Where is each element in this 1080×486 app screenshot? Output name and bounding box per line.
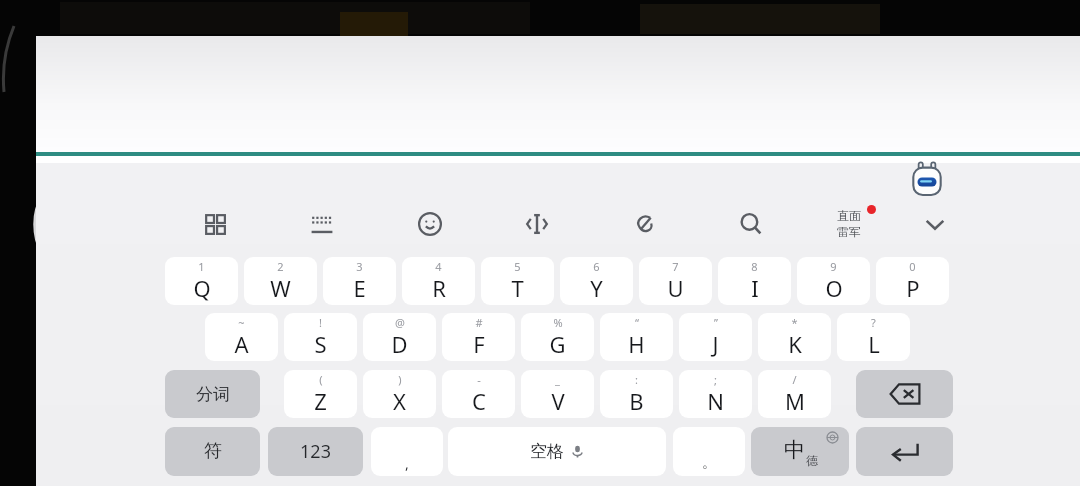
button[interactable]: 8 — [718, 257, 791, 305]
button[interactable]: ~ — [205, 313, 278, 361]
staticText: / — [792, 372, 797, 387]
button[interactable]: / — [758, 370, 831, 418]
button[interactable]: ? — [837, 313, 910, 361]
staticText: 。 — [702, 454, 716, 472]
staticText: @ — [395, 315, 405, 330]
staticText: % — [553, 315, 563, 330]
staticText: 6 — [593, 259, 600, 274]
staticText: 9 — [830, 259, 837, 274]
button[interactable]: Switch language — [751, 427, 849, 476]
button[interactable]: Hide keyboard — [915, 204, 955, 244]
staticText: 分词 — [196, 384, 230, 405]
staticText: - — [477, 372, 481, 387]
button[interactable]: * — [758, 313, 831, 361]
staticText: ? — [871, 315, 876, 330]
staticText: 8 — [751, 259, 758, 274]
staticText: N — [707, 386, 724, 416]
button[interactable]: 分词 — [165, 370, 260, 418]
button[interactable]: 。 — [673, 427, 745, 476]
button[interactable]: Text cursor — [517, 204, 557, 244]
button[interactable]: Assistant — [908, 160, 946, 198]
button[interactable]: 123 — [268, 427, 363, 476]
staticText: : — [635, 372, 638, 387]
button[interactable]: Emoji — [410, 204, 450, 244]
staticText: ! — [319, 315, 322, 330]
button[interactable]: 3 — [323, 257, 396, 305]
button[interactable]: 4 — [402, 257, 475, 305]
staticText: J — [712, 329, 719, 359]
button[interactable]: 符 — [165, 427, 260, 476]
staticText: _ — [555, 372, 560, 387]
staticText: 3 — [356, 259, 363, 274]
button[interactable]: 0 — [876, 257, 949, 305]
button[interactable]: Search — [731, 204, 771, 244]
staticText: W — [270, 273, 291, 303]
staticText: I — [751, 273, 759, 303]
button[interactable]: - — [442, 370, 515, 418]
button[interactable]: 9 — [797, 257, 870, 305]
button[interactable]: 空格 — [448, 427, 666, 476]
staticText: M — [785, 386, 805, 416]
button[interactable]: 直面 — [831, 203, 883, 245]
button[interactable]: Clipboard — [625, 204, 665, 244]
staticText: C — [472, 386, 486, 416]
button[interactable]: _ — [521, 370, 594, 418]
button[interactable]: 6 — [560, 257, 633, 305]
staticText: ~ — [238, 315, 245, 330]
button[interactable]: ( — [284, 370, 357, 418]
staticText: 1 — [198, 259, 205, 274]
staticText: G — [549, 329, 566, 359]
staticText: 4 — [435, 259, 442, 274]
staticText: “ — [635, 315, 639, 330]
button[interactable]: ) — [363, 370, 436, 418]
staticText: 2 — [277, 259, 284, 274]
button[interactable]: # — [442, 313, 515, 361]
staticText: ” — [714, 315, 718, 330]
button[interactable]: Backspace — [856, 370, 953, 418]
staticText: R — [432, 273, 446, 303]
button[interactable]: 5 — [481, 257, 554, 305]
staticText: 符 — [204, 440, 222, 463]
button[interactable]: 1 — [165, 257, 238, 305]
button[interactable]: 7 — [639, 257, 712, 305]
button[interactable]: ! — [284, 313, 357, 361]
staticText: L — [868, 329, 880, 359]
button[interactable]: “ — [600, 313, 673, 361]
staticText: 中 — [784, 437, 805, 463]
staticText: # — [475, 315, 483, 330]
button[interactable]: Enter — [856, 427, 953, 476]
staticText: F — [473, 329, 485, 359]
button[interactable]: , — [371, 427, 443, 476]
staticText: ; — [714, 372, 717, 387]
staticText: U — [667, 273, 684, 303]
button[interactable]: Keyboard layout — [302, 204, 342, 244]
button[interactable]: @ — [363, 313, 436, 361]
staticText: ( — [319, 372, 323, 387]
staticText: D — [391, 329, 408, 359]
staticText: 0 — [909, 259, 916, 274]
button[interactable]: : — [600, 370, 673, 418]
button[interactable]: 2 — [244, 257, 317, 305]
staticText: O — [825, 273, 843, 303]
staticText: B — [629, 386, 644, 416]
staticText: 123 — [300, 439, 331, 464]
staticText: Y — [590, 273, 603, 303]
staticText: H — [628, 329, 645, 359]
button[interactable]: ” — [679, 313, 752, 361]
button[interactable]: % — [521, 313, 594, 361]
button[interactable]: ; — [679, 370, 752, 418]
staticText: * — [791, 315, 798, 330]
staticText: P — [906, 273, 920, 303]
staticText: Z — [314, 386, 327, 416]
staticText: Q — [193, 273, 211, 303]
staticText: 雷军 — [837, 224, 861, 239]
staticText: 德 — [806, 453, 818, 468]
staticText: T — [511, 273, 524, 303]
staticText: X — [393, 386, 406, 416]
staticText: ) — [398, 372, 402, 387]
staticText: A — [234, 329, 249, 359]
staticText: E — [353, 273, 366, 303]
button[interactable]: Apps — [195, 204, 235, 244]
staticText: 7 — [672, 259, 679, 274]
staticText: 直面 — [837, 208, 861, 223]
